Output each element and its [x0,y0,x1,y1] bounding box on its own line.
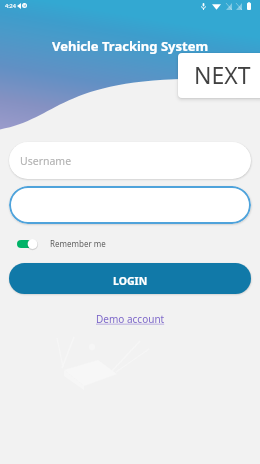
button[interactable] [9,186,251,224]
staticText: LOGIN [113,274,148,288]
staticText: NEXT [194,59,251,90]
button[interactable]: NEXT [178,53,260,98]
staticText: 4:24 [5,2,16,9]
staticText: Vehicle Tracking System [52,37,209,55]
staticText: Remember me [50,238,106,249]
staticText: Username [20,154,72,168]
button[interactable]: Username [9,142,251,179]
button[interactable]: Remember me [9,237,106,249]
button[interactable]: Demo account [96,312,165,326]
button[interactable]: LOGIN [9,263,251,294]
